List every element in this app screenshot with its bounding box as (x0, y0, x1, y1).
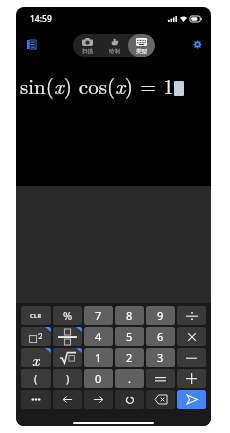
staticText: 1 (95, 350, 102, 365)
button[interactable]: 8 (115, 306, 144, 325)
button[interactable]: x (21, 348, 51, 367)
button[interactable]: % (53, 306, 82, 325)
staticText: . (128, 371, 131, 386)
button[interactable]: 3 (146, 348, 175, 367)
staticText: 8 (126, 308, 133, 323)
button[interactable]: 2 (21, 327, 51, 346)
button[interactable]: ) (53, 369, 82, 388)
button[interactable]: 扫描 (73, 34, 101, 57)
button[interactable] (177, 369, 206, 388)
staticText: sin(x) cos(x) = 1 (20, 70, 174, 100)
button[interactable]: CLR (21, 306, 51, 325)
staticText: % (63, 308, 73, 323)
staticText: 14:59 (30, 13, 52, 25)
staticText: 7 (95, 308, 102, 323)
button[interactable]: 类型 (128, 34, 155, 57)
button[interactable] (115, 390, 144, 409)
button[interactable]: 0 (84, 369, 113, 388)
button[interactable]: History (21, 34, 41, 54)
button[interactable]: . (115, 369, 144, 388)
button[interactable] (53, 327, 82, 346)
button[interactable] (177, 348, 206, 367)
button[interactable] (177, 306, 206, 325)
button[interactable] (84, 390, 113, 409)
button[interactable] (146, 369, 175, 388)
button[interactable]: 绘制 (101, 34, 128, 57)
button[interactable] (53, 390, 82, 409)
staticText: 5 (126, 329, 133, 344)
staticText: 0 (95, 371, 102, 386)
button[interactable]: 7 (84, 306, 113, 325)
staticText: 9 (157, 308, 164, 323)
staticText: x (32, 348, 40, 367)
button[interactable]: 9 (146, 306, 175, 325)
staticText: ( (34, 371, 38, 386)
button[interactable] (21, 390, 51, 409)
button[interactable]: Settings (187, 34, 207, 54)
button[interactable]: 2 (115, 348, 144, 367)
button[interactable] (146, 390, 175, 409)
button[interactable]: 6 (146, 327, 175, 346)
staticText: 3 (157, 350, 164, 365)
staticText: ) (66, 371, 70, 386)
staticText: 类型 (136, 48, 147, 55)
button[interactable]: 1 (84, 348, 113, 367)
staticText: 2 (126, 350, 133, 365)
button[interactable]: 4 (84, 327, 113, 346)
button[interactable]: 5 (115, 327, 144, 346)
button[interactable] (177, 390, 206, 409)
staticText: 6 (157, 329, 164, 344)
staticText: 2 (38, 329, 43, 342)
button[interactable] (177, 327, 206, 346)
staticText: CLR (30, 312, 42, 319)
staticText: 扫描 (82, 48, 93, 55)
button[interactable]: ( (21, 369, 51, 388)
staticText: 绘制 (109, 48, 120, 55)
staticText: 4 (95, 329, 102, 344)
button[interactable] (53, 348, 82, 367)
